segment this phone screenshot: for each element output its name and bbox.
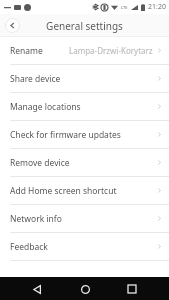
staticText: Rename [10,45,43,57]
button[interactable]: Remove device [0,149,169,176]
button[interactable]: Back [5,18,20,33]
staticText: Check for firmware updates [10,129,121,141]
button[interactable]: Recent apps [122,279,142,299]
staticText: Lampa-Drzwi-Korytarz [69,45,153,56]
button[interactable]: Check for firmware updates [0,121,169,148]
staticText: Remove device [10,157,70,169]
button[interactable]: Back [27,279,47,299]
staticText: LTE [121,5,128,10]
staticText: Share device [10,73,61,85]
button[interactable]: Feedback [0,233,169,260]
staticText: 21:20 [148,2,166,12]
button[interactable]: Home [75,279,95,299]
button[interactable]: Rename [0,37,169,64]
staticText: Manage locations [10,101,81,113]
button[interactable]: Manage locations [0,93,169,120]
staticText: Network info [10,213,62,225]
button[interactable]: Share device [0,65,169,92]
button[interactable]: Network info [0,205,169,232]
staticText: General settings [46,19,123,33]
staticText: Add Home screen shortcut [10,185,117,197]
staticText: Feedback [10,241,48,253]
button[interactable]: Add Home screen shortcut [0,177,169,204]
